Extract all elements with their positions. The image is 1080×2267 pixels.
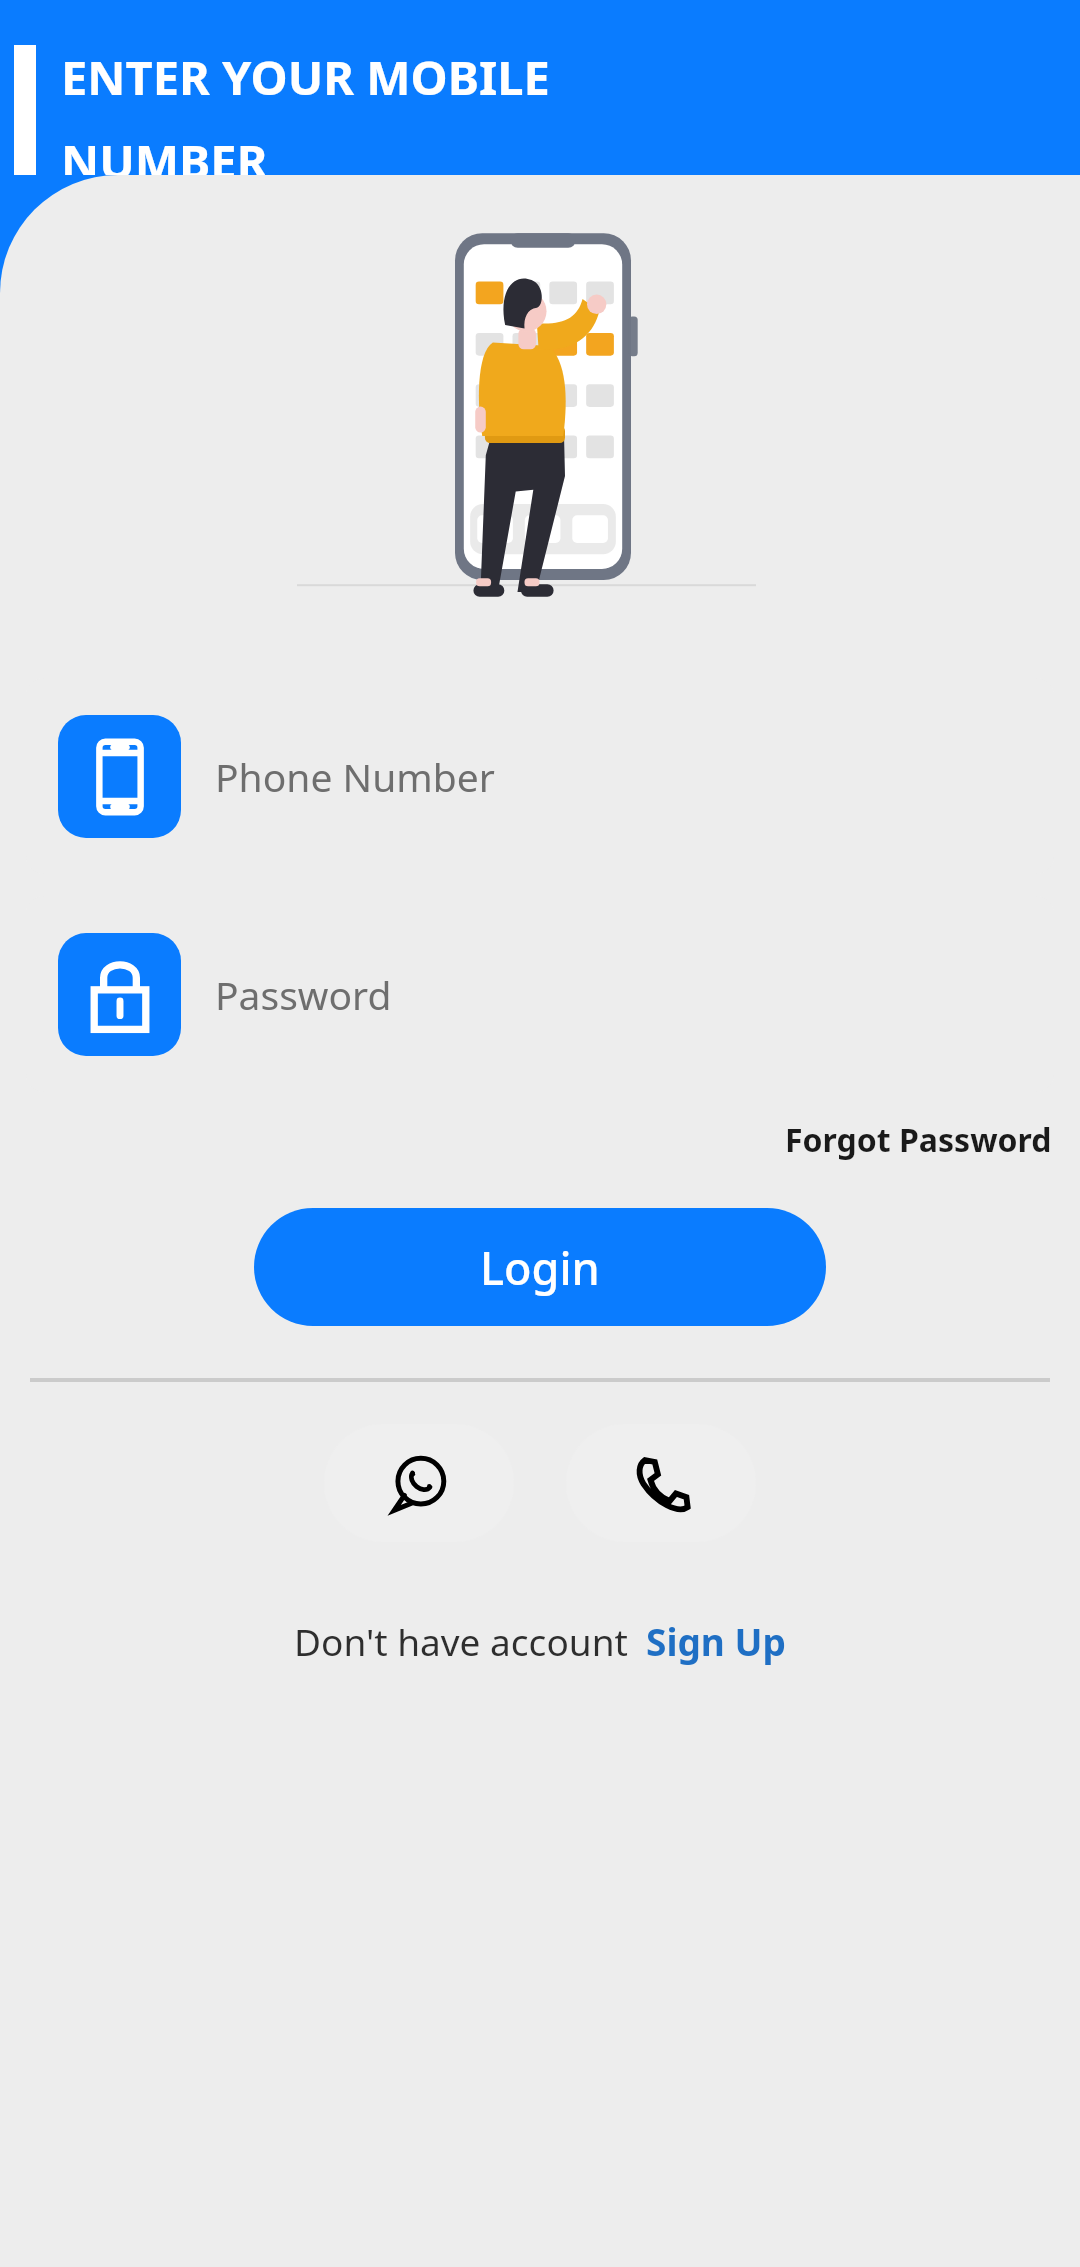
button[interactable]: WhatsApp	[324, 1424, 514, 1542]
button[interactable]: Call	[566, 1424, 756, 1542]
button[interactable]: Login	[254, 1208, 826, 1326]
staticText: Forgot Password	[785, 1118, 1052, 1162]
staticText: Password	[215, 968, 392, 1021]
button[interactable]: Password	[26, 896, 1054, 1092]
button[interactable]: Sign Up	[646, 1616, 786, 1666]
staticText: Phone Number	[215, 750, 495, 803]
button[interactable]: Forgot Password	[785, 1108, 1080, 1172]
button[interactable]: Phone Number	[26, 678, 1054, 874]
staticText: Login	[480, 1237, 600, 1298]
staticText: Don't have account	[294, 1616, 628, 1666]
staticText: Sign Up	[646, 1616, 786, 1666]
staticText: ENTER YOUR MOBILE NUMBER	[61, 45, 550, 175]
